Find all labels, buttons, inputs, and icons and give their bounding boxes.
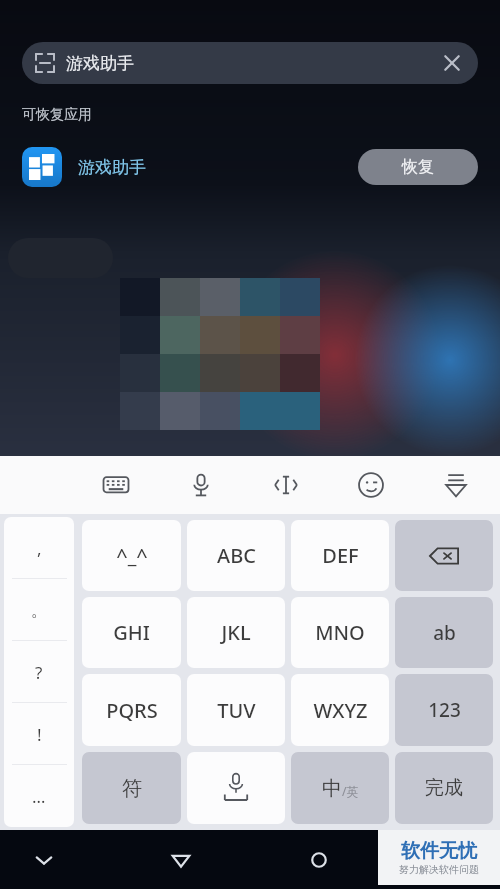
staticText: 123 — [428, 697, 461, 723]
button[interactable]: WXYZ — [291, 674, 389, 746]
staticText: 软件无忧 — [401, 839, 477, 863]
button[interactable]: PQRS — [82, 674, 181, 746]
button[interactable]: Back — [159, 838, 203, 882]
staticText: 恢复 — [402, 157, 434, 177]
staticText: DEF — [322, 542, 359, 569]
button[interactable]: 游戏助手 — [0, 138, 500, 196]
button[interactable]: ! — [4, 703, 74, 765]
staticText: WXYZ — [313, 697, 368, 724]
staticText: , — [37, 537, 42, 560]
button[interactable]: … — [4, 765, 74, 827]
button[interactable]: Keyboard — [96, 465, 136, 505]
button[interactable]: 符 — [82, 752, 181, 824]
button[interactable]: GHI — [82, 597, 181, 668]
staticText: ^_^ — [116, 542, 148, 569]
staticText: JKL — [221, 619, 251, 646]
staticText: 努力解决软件问题 — [399, 863, 479, 876]
button[interactable]: Recents — [434, 838, 478, 882]
staticText: 中 — [322, 776, 342, 801]
button[interactable]: 完成 — [395, 752, 493, 824]
button[interactable] — [395, 520, 493, 591]
staticText: TUV — [217, 697, 256, 724]
button[interactable]: Home — [297, 838, 341, 882]
staticText: PQRS — [106, 697, 158, 724]
button[interactable]: MNO — [291, 597, 389, 668]
button[interactable]: Space — [187, 752, 285, 824]
staticText: MNO — [315, 619, 365, 646]
button[interactable]: Edit — [266, 465, 306, 505]
button[interactable]: , — [4, 517, 74, 579]
staticText: 游戏助手 — [78, 157, 146, 178]
button[interactable]: Clear — [440, 51, 464, 75]
staticText: 。 — [31, 600, 48, 621]
button[interactable]: 游戏助手 — [22, 42, 478, 84]
button[interactable]: ? — [4, 641, 74, 703]
staticText: ab — [433, 620, 456, 646]
staticText: GHI — [113, 619, 150, 646]
staticText: ? — [35, 661, 43, 684]
button[interactable]: JKL — [187, 597, 285, 668]
button[interactable]: ABC — [187, 520, 285, 591]
staticText: ABC — [217, 542, 256, 569]
staticText: … — [32, 785, 46, 808]
button[interactable]: Emoji — [351, 465, 391, 505]
staticText: /英 — [342, 783, 359, 799]
button[interactable]: Hide — [22, 838, 66, 882]
staticText: 符 — [122, 776, 142, 801]
staticText: 完成 — [425, 776, 463, 800]
staticText: ! — [37, 723, 42, 746]
button[interactable]: 。 — [4, 579, 74, 641]
staticText: 可恢复应用 — [22, 106, 92, 124]
button[interactable]: DEF — [291, 520, 389, 591]
button[interactable]: 恢复 — [358, 149, 478, 185]
button[interactable]: ab — [395, 597, 493, 668]
button[interactable]: 中 — [291, 752, 389, 824]
button[interactable]: ^_^ — [82, 520, 181, 591]
button[interactable]: Voice input — [181, 465, 221, 505]
button[interactable]: TUV — [187, 674, 285, 746]
staticText: 游戏助手 — [66, 53, 134, 74]
button[interactable]: 123 — [395, 674, 493, 746]
button[interactable]: Hide keyboard — [436, 465, 476, 505]
